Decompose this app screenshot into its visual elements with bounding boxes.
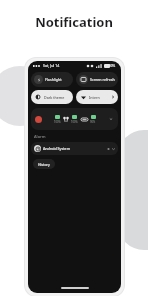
button[interactable]: Android System xyxy=(31,142,118,155)
other: Device xyxy=(35,116,42,123)
button[interactable]: Screen refresh rate xyxy=(76,72,118,87)
button[interactable]: History xyxy=(33,159,55,169)
button[interactable]: Internet xyxy=(76,90,118,104)
staticText: History xyxy=(38,162,50,167)
staticText: Notification xyxy=(35,13,113,31)
button[interactable]: Expand xyxy=(108,116,114,122)
staticText: Internet xyxy=(89,95,100,100)
staticText: Alarm xyxy=(34,134,46,139)
staticText: Sat, Jul 14 xyxy=(43,63,60,68)
staticText: 100% xyxy=(107,64,116,68)
staticText: Flashlight xyxy=(45,77,62,82)
staticText: 90% xyxy=(90,120,96,124)
button[interactable]: Flashlight xyxy=(31,72,73,87)
staticText: Android System xyxy=(43,146,71,151)
button[interactable]: Device xyxy=(31,108,118,130)
staticText: 100% xyxy=(54,120,61,124)
staticText: Screen refresh rate xyxy=(90,77,115,82)
staticText: Dark theme xyxy=(44,95,65,100)
button[interactable]: Dark theme xyxy=(31,90,73,104)
staticText: 100% xyxy=(71,120,78,124)
